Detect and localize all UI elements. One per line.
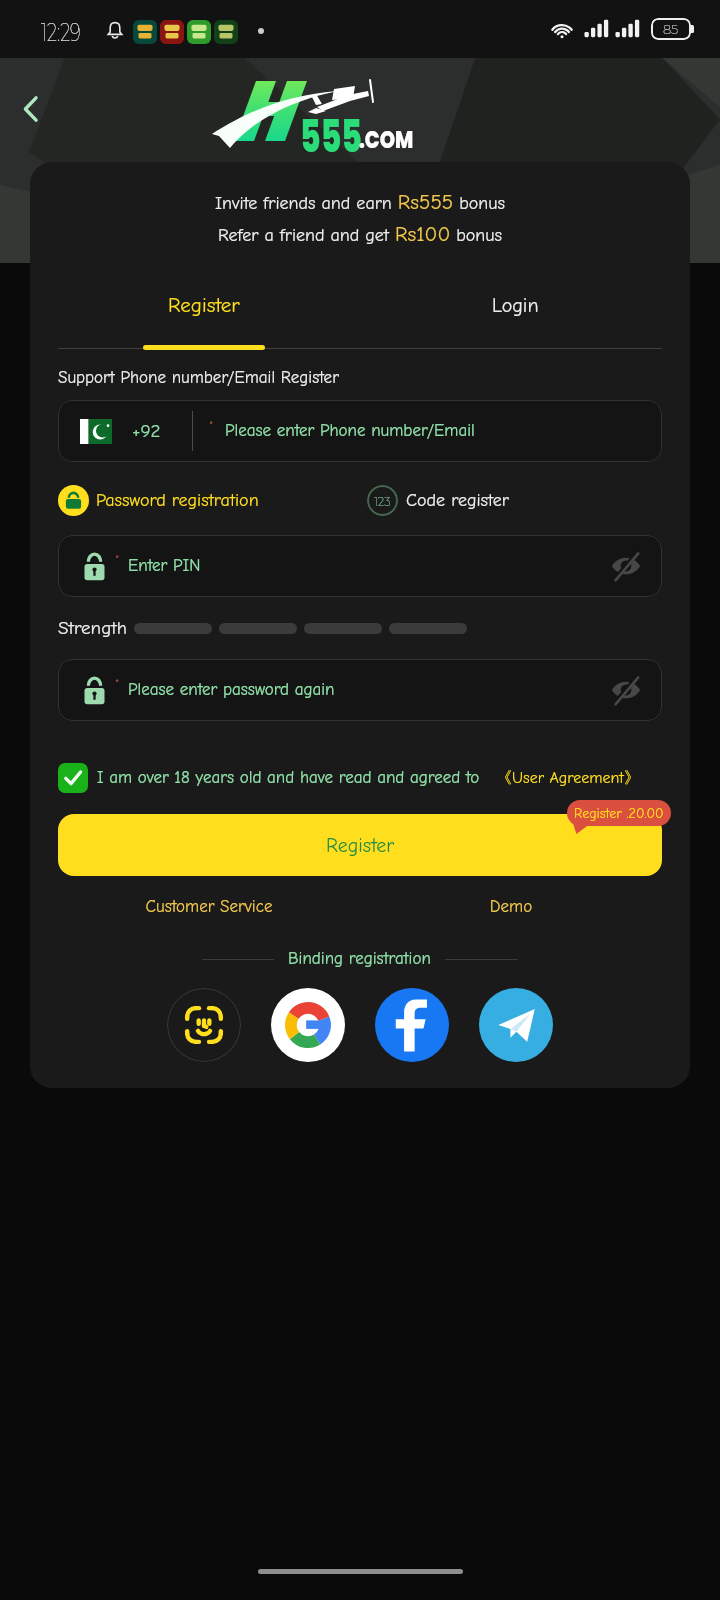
button[interactable]: Sign in with Google <box>271 988 345 1062</box>
button[interactable]: * <box>58 659 662 721</box>
button[interactable] <box>58 763 88 793</box>
staticText: Refer a friend and get Rs100 bonus <box>30 222 690 246</box>
staticText: Binding registration <box>288 949 431 969</box>
staticText: * <box>115 553 120 566</box>
button[interactable]: +92 <box>58 400 662 462</box>
button[interactable]: 《User Agreement》 <box>496 768 640 788</box>
button[interactable]: Demo <box>360 897 662 917</box>
button[interactable]: Login <box>430 286 601 324</box>
staticText: Invite friends and earn Rs555 bonus <box>30 190 690 214</box>
staticText: Please enter Phone number/Email <box>225 421 475 441</box>
button[interactable]: Sign in with Facebook <box>375 988 449 1062</box>
staticText: .COM <box>359 122 414 157</box>
button[interactable]: * <box>58 535 662 597</box>
button[interactable]: Show password <box>600 540 652 592</box>
staticText: Login <box>492 294 539 317</box>
staticText: 123 <box>374 492 391 509</box>
button[interactable]: Sign in with Telegram <box>479 988 553 1062</box>
button[interactable]: Password registration <box>58 484 259 516</box>
button[interactable]: Register <box>118 286 289 324</box>
staticText: * <box>209 419 214 432</box>
staticText: Code register <box>406 490 509 511</box>
staticText: Enter PIN <box>128 556 201 576</box>
button[interactable]: Face ID login <box>167 988 241 1062</box>
button[interactable]: Show password <box>600 664 652 716</box>
staticText: I am over 18 years old and have read and… <box>97 768 480 788</box>
staticText: 555 <box>300 105 362 168</box>
staticText: Register <box>168 293 240 317</box>
staticText: Strength <box>58 617 127 639</box>
staticText: Register .20.00 <box>574 805 664 821</box>
button[interactable]: Back <box>8 86 54 132</box>
staticText: * <box>115 677 120 690</box>
button[interactable]: Customer Service <box>58 897 360 917</box>
staticText: 12:29 <box>41 18 81 47</box>
staticText: 85 <box>663 21 679 37</box>
staticText: Support Phone number/Email Register <box>58 368 339 388</box>
button[interactable]: 123 <box>367 484 509 516</box>
staticText: Please enter password again <box>128 680 335 700</box>
staticText: Register <box>326 834 395 857</box>
staticText: +92 <box>132 420 161 442</box>
staticText: Password registration <box>96 490 259 511</box>
button[interactable]: Register <box>58 814 662 876</box>
